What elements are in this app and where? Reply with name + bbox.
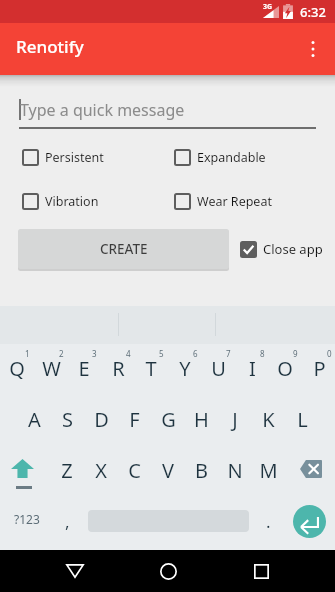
staticText: V (162, 457, 174, 484)
button[interactable]: B (184, 445, 218, 495)
button[interactable]: O (268, 343, 302, 393)
staticText: 1 (25, 348, 30, 359)
button[interactable]: C (117, 445, 151, 495)
button[interactable]: A (17, 394, 51, 444)
staticText: W (42, 355, 61, 382)
staticText: . (266, 510, 271, 533)
staticText: 5 (159, 348, 164, 359)
button[interactable]: D (84, 394, 118, 444)
button[interactable]: Wear Repeat (174, 193, 272, 210)
button[interactable]: X (84, 445, 118, 495)
button[interactable] (85, 496, 250, 546)
button[interactable]: Enter (286, 496, 335, 546)
button[interactable]: I (235, 343, 269, 393)
staticText: B (195, 457, 208, 484)
staticText: 6:32 (300, 3, 326, 21)
staticText: , (65, 510, 70, 533)
staticText: J (232, 406, 238, 433)
button[interactable]: . (251, 496, 286, 546)
staticText: Close app (263, 240, 323, 258)
button[interactable]: L (285, 394, 319, 444)
staticText: Renotify (16, 35, 84, 58)
button[interactable]: J (218, 394, 252, 444)
button[interactable]: Vibration (22, 193, 99, 210)
staticText: A (28, 406, 41, 433)
staticText: S (62, 406, 73, 433)
staticText: G (161, 406, 176, 433)
staticText: T (145, 355, 157, 382)
staticText: 3G (263, 2, 273, 12)
button[interactable]: M (251, 445, 285, 495)
staticText: Q (9, 355, 25, 382)
button[interactable]: H (184, 394, 218, 444)
button[interactable]: F (117, 394, 151, 444)
button[interactable]: Shift (0, 445, 50, 495)
button[interactable]: Backspace (285, 445, 335, 495)
staticText: 0 (327, 348, 332, 359)
button[interactable]: Home (146, 550, 190, 592)
button[interactable]: V (151, 445, 185, 495)
staticText: P (313, 355, 326, 382)
button[interactable]: S (50, 394, 84, 444)
staticText: ?123 (14, 511, 40, 527)
button[interactable]: W (34, 343, 68, 393)
staticText: R (112, 355, 125, 382)
staticText: 3 (92, 348, 97, 359)
staticText: Wear Repeat (197, 193, 272, 210)
staticText: 6 (193, 348, 198, 359)
button[interactable]: Q (0, 343, 34, 393)
staticText: Y (179, 355, 191, 382)
staticText: 9 (293, 348, 298, 359)
button[interactable]: R (101, 343, 135, 393)
staticText: Persistent (45, 149, 104, 166)
staticText: F (129, 406, 140, 433)
staticText: N (227, 457, 243, 484)
staticText: Vibration (45, 193, 99, 210)
button[interactable]: CREATE (18, 229, 229, 269)
button[interactable]: ?123 (2, 494, 52, 544)
staticText: C (128, 457, 141, 484)
button[interactable]: Persistent (22, 149, 104, 166)
staticText: X (95, 457, 107, 484)
button[interactable]: T (134, 343, 168, 393)
staticText: 2 (59, 348, 64, 359)
staticText: Type a quick message (20, 99, 185, 121)
button[interactable]: Expandable (174, 149, 266, 166)
staticText: K (262, 406, 275, 433)
button[interactable]: Z (50, 445, 84, 495)
staticText: U (211, 355, 226, 382)
button[interactable]: U (201, 343, 235, 393)
staticText: 7 (226, 348, 231, 359)
button[interactable]: N (218, 445, 252, 495)
staticText: 4 (126, 348, 131, 359)
staticText: Z (61, 457, 73, 484)
staticText: M (259, 457, 278, 484)
button[interactable]: Back (53, 550, 97, 592)
staticText: D (94, 406, 109, 433)
staticText: O (277, 355, 293, 382)
button[interactable]: K (251, 394, 285, 444)
staticText: I (249, 355, 256, 382)
staticText: CREATE (100, 240, 148, 258)
button[interactable]: E (67, 343, 101, 393)
button[interactable]: , (50, 496, 85, 546)
button[interactable]: P (302, 343, 335, 393)
button[interactable]: More options (291, 27, 335, 71)
staticText: Expandable (197, 149, 266, 166)
button[interactable]: Recent apps (239, 550, 283, 592)
staticText: 8 (260, 348, 265, 359)
staticText: H (194, 406, 209, 433)
staticText: E (78, 355, 90, 382)
button[interactable]: Close app (240, 240, 323, 258)
button[interactable]: G (151, 394, 185, 444)
button[interactable]: Y (168, 343, 202, 393)
staticText: L (297, 406, 308, 433)
